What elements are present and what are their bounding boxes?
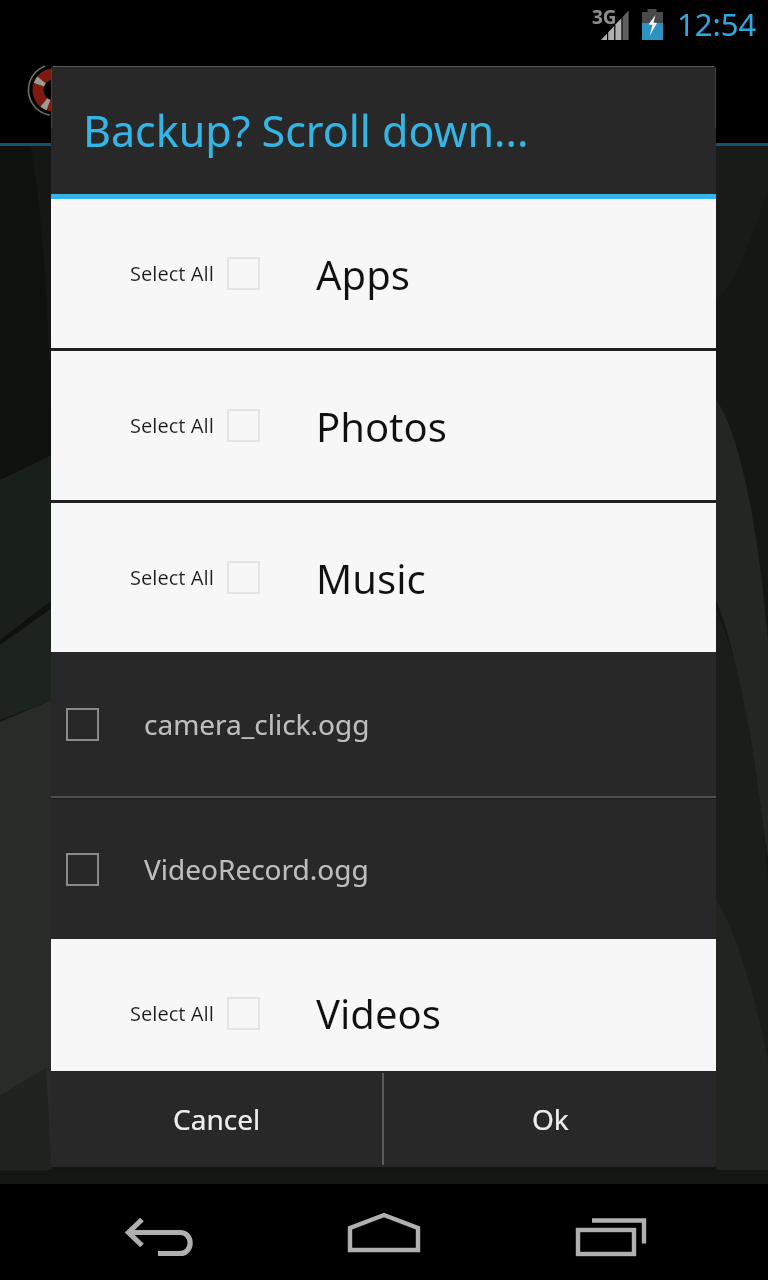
staticText: Backup? Scroll down...: [83, 101, 529, 160]
button[interactable]: Select camera_click.ogg: [51, 652, 716, 796]
button[interactable]: Select All: [51, 503, 716, 652]
button[interactable]: Ok: [384, 1071, 716, 1167]
button[interactable]: Select All: [51, 947, 716, 1071]
staticText: Select All: [130, 412, 214, 439]
staticText: 3G: [592, 4, 617, 30]
button[interactable]: Select VideoRecord.ogg: [66, 853, 99, 886]
staticText: Photos: [316, 399, 447, 453]
staticText: Music: [316, 551, 426, 605]
button[interactable]: Select all Music: [227, 561, 260, 594]
button[interactable]: Select All: [51, 351, 716, 500]
button[interactable]: Select camera_click.ogg: [66, 708, 99, 741]
button[interactable]: Select VideoRecord.ogg: [51, 799, 716, 939]
staticText: Cancel: [173, 1100, 261, 1138]
staticText: Videos: [316, 986, 441, 1040]
button[interactable]: Home: [320, 1184, 448, 1280]
button[interactable]: Back: [96, 1184, 224, 1280]
staticText: 12:54: [677, 3, 757, 45]
staticText: Select All: [130, 1000, 214, 1027]
button[interactable]: Select all Photos: [227, 409, 260, 442]
staticText: VideoRecord.ogg: [144, 850, 369, 888]
button[interactable]: Select all Videos: [227, 997, 260, 1030]
staticText: Select All: [130, 564, 214, 591]
staticText: camera_click.ogg: [144, 705, 370, 743]
staticText: Ok: [532, 1100, 569, 1138]
staticText: Apps: [316, 247, 410, 301]
staticText: Select All: [130, 260, 214, 287]
button[interactable]: Cancel: [51, 1071, 382, 1167]
button[interactable]: Select All: [51, 199, 716, 348]
button[interactable]: Recent apps: [544, 1184, 672, 1280]
button[interactable]: Select all Apps: [227, 257, 260, 290]
